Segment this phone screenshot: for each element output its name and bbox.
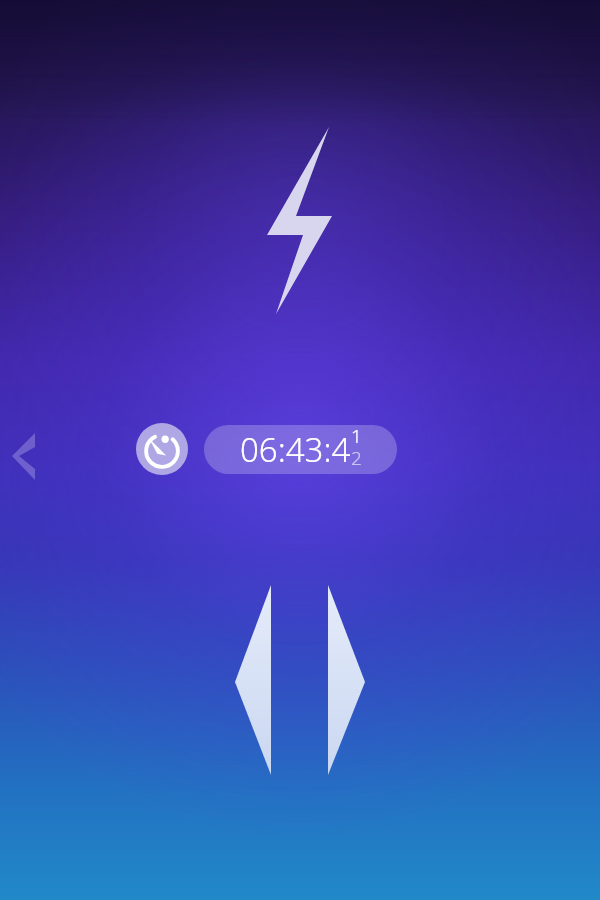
button[interactable]: 06:43:4 xyxy=(204,425,397,474)
staticText: 06:43:4 xyxy=(240,427,351,472)
button[interactable]: Back xyxy=(2,420,50,490)
button[interactable]: Timer xyxy=(136,423,188,475)
button[interactable]: Pause xyxy=(225,578,375,780)
staticText: 1 xyxy=(351,425,362,449)
staticText: 2 xyxy=(351,445,362,468)
